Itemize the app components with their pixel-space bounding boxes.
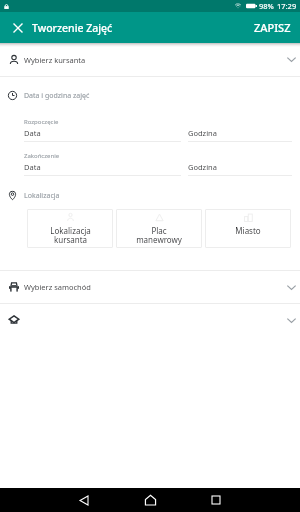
staticText: 98% <box>259 1 274 11</box>
staticText: Data i godzina zajęć <box>24 91 90 101</box>
staticText: Tworzenie Zajęć <box>32 21 113 35</box>
staticText: Lokalizacja <box>24 191 60 201</box>
staticText: 17:29 <box>277 1 297 11</box>
staticText: Godzina <box>188 128 217 138</box>
button[interactable]: Wybierz samochód <box>0 271 300 303</box>
button[interactable]: Zakończenie <box>24 152 181 176</box>
staticText: Wybierz samochód <box>24 282 91 292</box>
staticText: Plac manewrowy <box>136 225 182 246</box>
staticText: ZAPISZ <box>254 20 291 35</box>
button[interactable]: Godzina <box>188 118 292 142</box>
button[interactable]: Home <box>122 488 178 512</box>
button[interactable]: Lokalizacja kursanta <box>27 209 113 248</box>
button[interactable]: Expand section <box>0 304 300 336</box>
button[interactable]: Close <box>0 12 36 43</box>
button[interactable]: Rozpoczęcie <box>24 118 181 142</box>
button[interactable]: Recent apps <box>188 488 244 512</box>
button[interactable]: Wybierz kursanta <box>0 43 300 76</box>
button[interactable]: Miasto <box>205 209 291 248</box>
staticText: Rozpoczęcie <box>24 118 59 126</box>
staticText: Lokalizacja kursanta <box>50 225 91 246</box>
staticText: Miasto <box>235 225 261 236</box>
staticText: Data <box>24 162 41 172</box>
button[interactable]: Plac manewrowy <box>116 209 202 248</box>
button[interactable]: Back <box>56 488 112 512</box>
button[interactable]: Godzina <box>188 152 292 176</box>
staticText: Data <box>24 128 41 138</box>
staticText: Zakończenie <box>24 152 60 160</box>
staticText: Wybierz kursanta <box>24 55 86 65</box>
staticText: Godzina <box>188 162 217 172</box>
button[interactable]: ZAPISZ <box>245 12 300 43</box>
